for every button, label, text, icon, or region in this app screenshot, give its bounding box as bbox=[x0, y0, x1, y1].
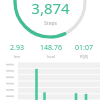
button[interactable]: Step goal progress bbox=[0, 0, 100, 46]
staticText: 3,874 bbox=[31, 0, 70, 18]
button[interactable]: 3,874 bbox=[0, 0, 100, 27]
button[interactable]: 148.76 bbox=[34, 43, 67, 59]
staticText: Steps bbox=[44, 20, 57, 27]
staticText: 01:07 bbox=[75, 43, 93, 53]
staticText: 2.93 bbox=[10, 43, 24, 53]
staticText: km bbox=[14, 54, 20, 59]
button[interactable]: Activity chart bbox=[0, 62, 100, 100]
staticText: 148.76 bbox=[40, 43, 62, 53]
button[interactable]: 01:07 bbox=[67, 43, 100, 59]
staticText: kcal bbox=[47, 54, 55, 59]
button[interactable]: 2.93 bbox=[0, 43, 34, 59]
staticText: 时间 bbox=[80, 54, 88, 59]
